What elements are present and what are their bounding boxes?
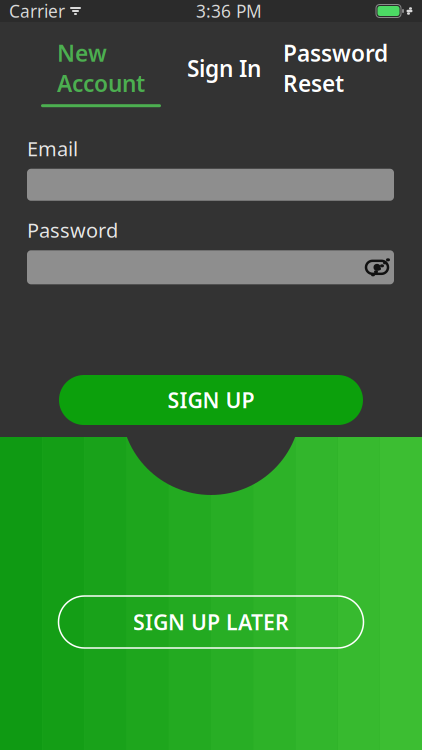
staticText: Carrier	[9, 0, 65, 22]
staticText: New Account	[57, 38, 145, 98]
button[interactable]: SIGN UP LATER	[58, 596, 363, 648]
staticText: Password Reset	[283, 38, 388, 98]
staticText: Password	[27, 217, 118, 243]
button[interactable]: Show password	[360, 250, 394, 284]
staticText: SIGN UP	[167, 386, 254, 414]
button[interactable]: Sign In	[183, 53, 265, 92]
button[interactable]: New Account	[37, 38, 165, 107]
staticText: Sign In	[187, 53, 261, 83]
staticText: Email	[27, 135, 78, 162]
staticText: SIGN UP LATER	[133, 608, 289, 636]
button[interactable]: SIGN UP	[59, 375, 363, 425]
staticText: 3:36 PM	[196, 0, 262, 22]
button[interactable]: Password Reset	[279, 38, 392, 107]
